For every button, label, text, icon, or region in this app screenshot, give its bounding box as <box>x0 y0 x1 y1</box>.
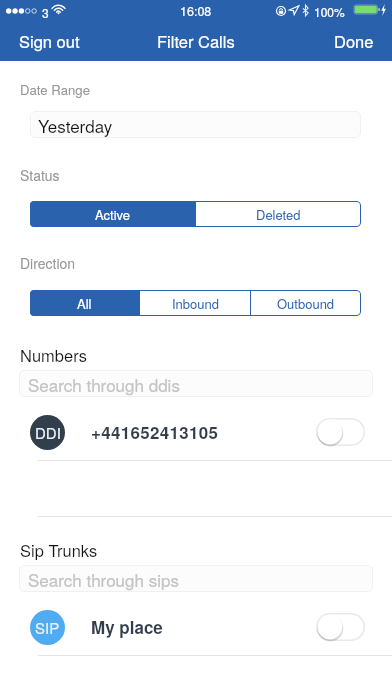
button[interactable]: Done <box>322 22 392 60</box>
staticText: Outbound <box>277 294 335 313</box>
staticText: Done <box>334 29 374 53</box>
staticText: Active <box>95 205 131 224</box>
button[interactable]: All <box>30 290 139 316</box>
staticText: Date Range <box>20 80 90 99</box>
button[interactable]: SIP <box>0 604 392 650</box>
staticText: Search through ddis <box>28 372 180 396</box>
staticText: Filter Calls <box>157 29 235 53</box>
button[interactable]: Active <box>30 201 195 227</box>
button[interactable]: Search through sips <box>19 565 373 592</box>
staticText: DDI <box>35 422 61 443</box>
button[interactable]: Deleted <box>196 201 361 227</box>
button[interactable]: Yesterday <box>30 111 361 138</box>
button[interactable]: Search through ddis <box>19 370 373 397</box>
staticText: Yesterday <box>38 113 113 137</box>
button[interactable]: Sign out <box>0 22 92 60</box>
staticText: Status <box>20 165 60 185</box>
button[interactable]: Inbound <box>140 290 250 316</box>
staticText: 16:08 <box>180 2 212 20</box>
button[interactable]: DDI <box>0 409 392 455</box>
button[interactable]: Toggle +441652413105 <box>316 418 365 446</box>
staticText: Sign out <box>19 29 80 53</box>
staticText: Direction <box>20 253 76 273</box>
staticText: Inbound <box>172 294 219 313</box>
staticText: Sip Trunks <box>20 538 98 562</box>
staticText: Deleted <box>256 205 301 224</box>
staticText: Search through sips <box>28 567 179 591</box>
staticText: My place <box>91 615 163 639</box>
button[interactable]: Outbound <box>251 290 361 316</box>
button[interactable]: Toggle My place <box>316 613 365 641</box>
staticText: 100% <box>314 3 345 20</box>
staticText: +441652413105 <box>91 420 219 444</box>
staticText: All <box>77 294 92 313</box>
staticText: Numbers <box>20 343 88 367</box>
staticText: 3 <box>42 4 49 21</box>
staticText: SIP <box>35 617 60 638</box>
